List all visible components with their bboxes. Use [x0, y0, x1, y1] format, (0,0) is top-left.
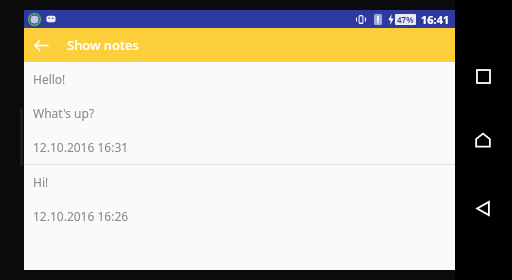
- button[interactable]: Navigate up: [24, 28, 58, 62]
- button[interactable]: Home: [463, 120, 503, 160]
- button[interactable]: Hi!: [24, 165, 455, 199]
- staticText: 47%: [397, 14, 414, 25]
- staticText: Hi!: [33, 174, 49, 190]
- button[interactable]: 12.10.2016 16:31: [24, 130, 455, 164]
- staticText: 16:41: [421, 12, 450, 27]
- button[interactable]: Back: [463, 188, 503, 228]
- staticText: 12.10.2016 16:26: [33, 208, 129, 224]
- staticText: What's up?: [33, 105, 95, 121]
- staticText: Show notes: [67, 36, 139, 54]
- button[interactable]: What's up?: [24, 96, 455, 130]
- staticText: 12.10.2016 16:31: [33, 139, 129, 155]
- staticText: Hello!: [33, 71, 66, 87]
- button[interactable]: Recent apps: [463, 56, 503, 96]
- button[interactable]: Hello!: [24, 62, 455, 96]
- button[interactable]: 12.10.2016 16:26: [24, 199, 455, 233]
